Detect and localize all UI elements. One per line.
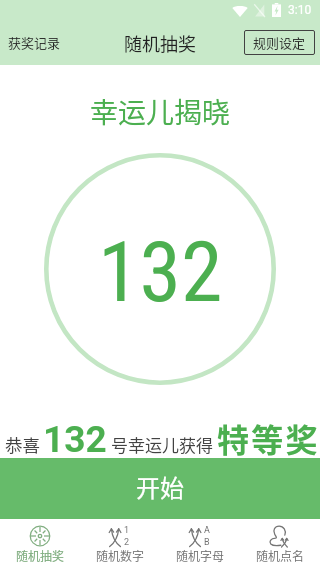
staticText: A	[204, 525, 210, 536]
staticText: 开始	[136, 469, 184, 504]
staticText: 随机抽奖	[16, 547, 65, 564]
staticText: 132	[98, 223, 223, 321]
staticText: 2	[124, 537, 130, 547]
button[interactable]: A	[160, 519, 240, 569]
button[interactable]: 规则设定	[244, 30, 315, 55]
button[interactable]: 开始	[0, 458, 320, 519]
staticText: B	[204, 537, 210, 547]
staticText: 随机数字	[96, 547, 145, 564]
button[interactable]: 随机抽奖	[0, 519, 80, 569]
staticText: 132	[43, 418, 107, 461]
button[interactable]: 1	[80, 519, 160, 569]
button[interactable]: 获奖记录	[0, 27, 69, 58]
staticText: 幸运儿揭晓	[90, 91, 231, 132]
staticText: 规则设定	[253, 33, 306, 52]
staticText: 获奖记录	[8, 33, 61, 52]
button[interactable]: 随机点名	[240, 519, 320, 569]
staticText: 随机点名	[256, 547, 305, 564]
staticText: 号幸运儿获得	[111, 432, 213, 457]
staticText: 恭喜	[5, 432, 40, 457]
staticText: 随机字母	[176, 547, 225, 564]
staticText: 1	[124, 525, 130, 536]
staticText: 3:10	[288, 3, 312, 17]
staticText: 特等奖	[217, 415, 320, 461]
staticText: 随机抽奖	[124, 30, 196, 56]
